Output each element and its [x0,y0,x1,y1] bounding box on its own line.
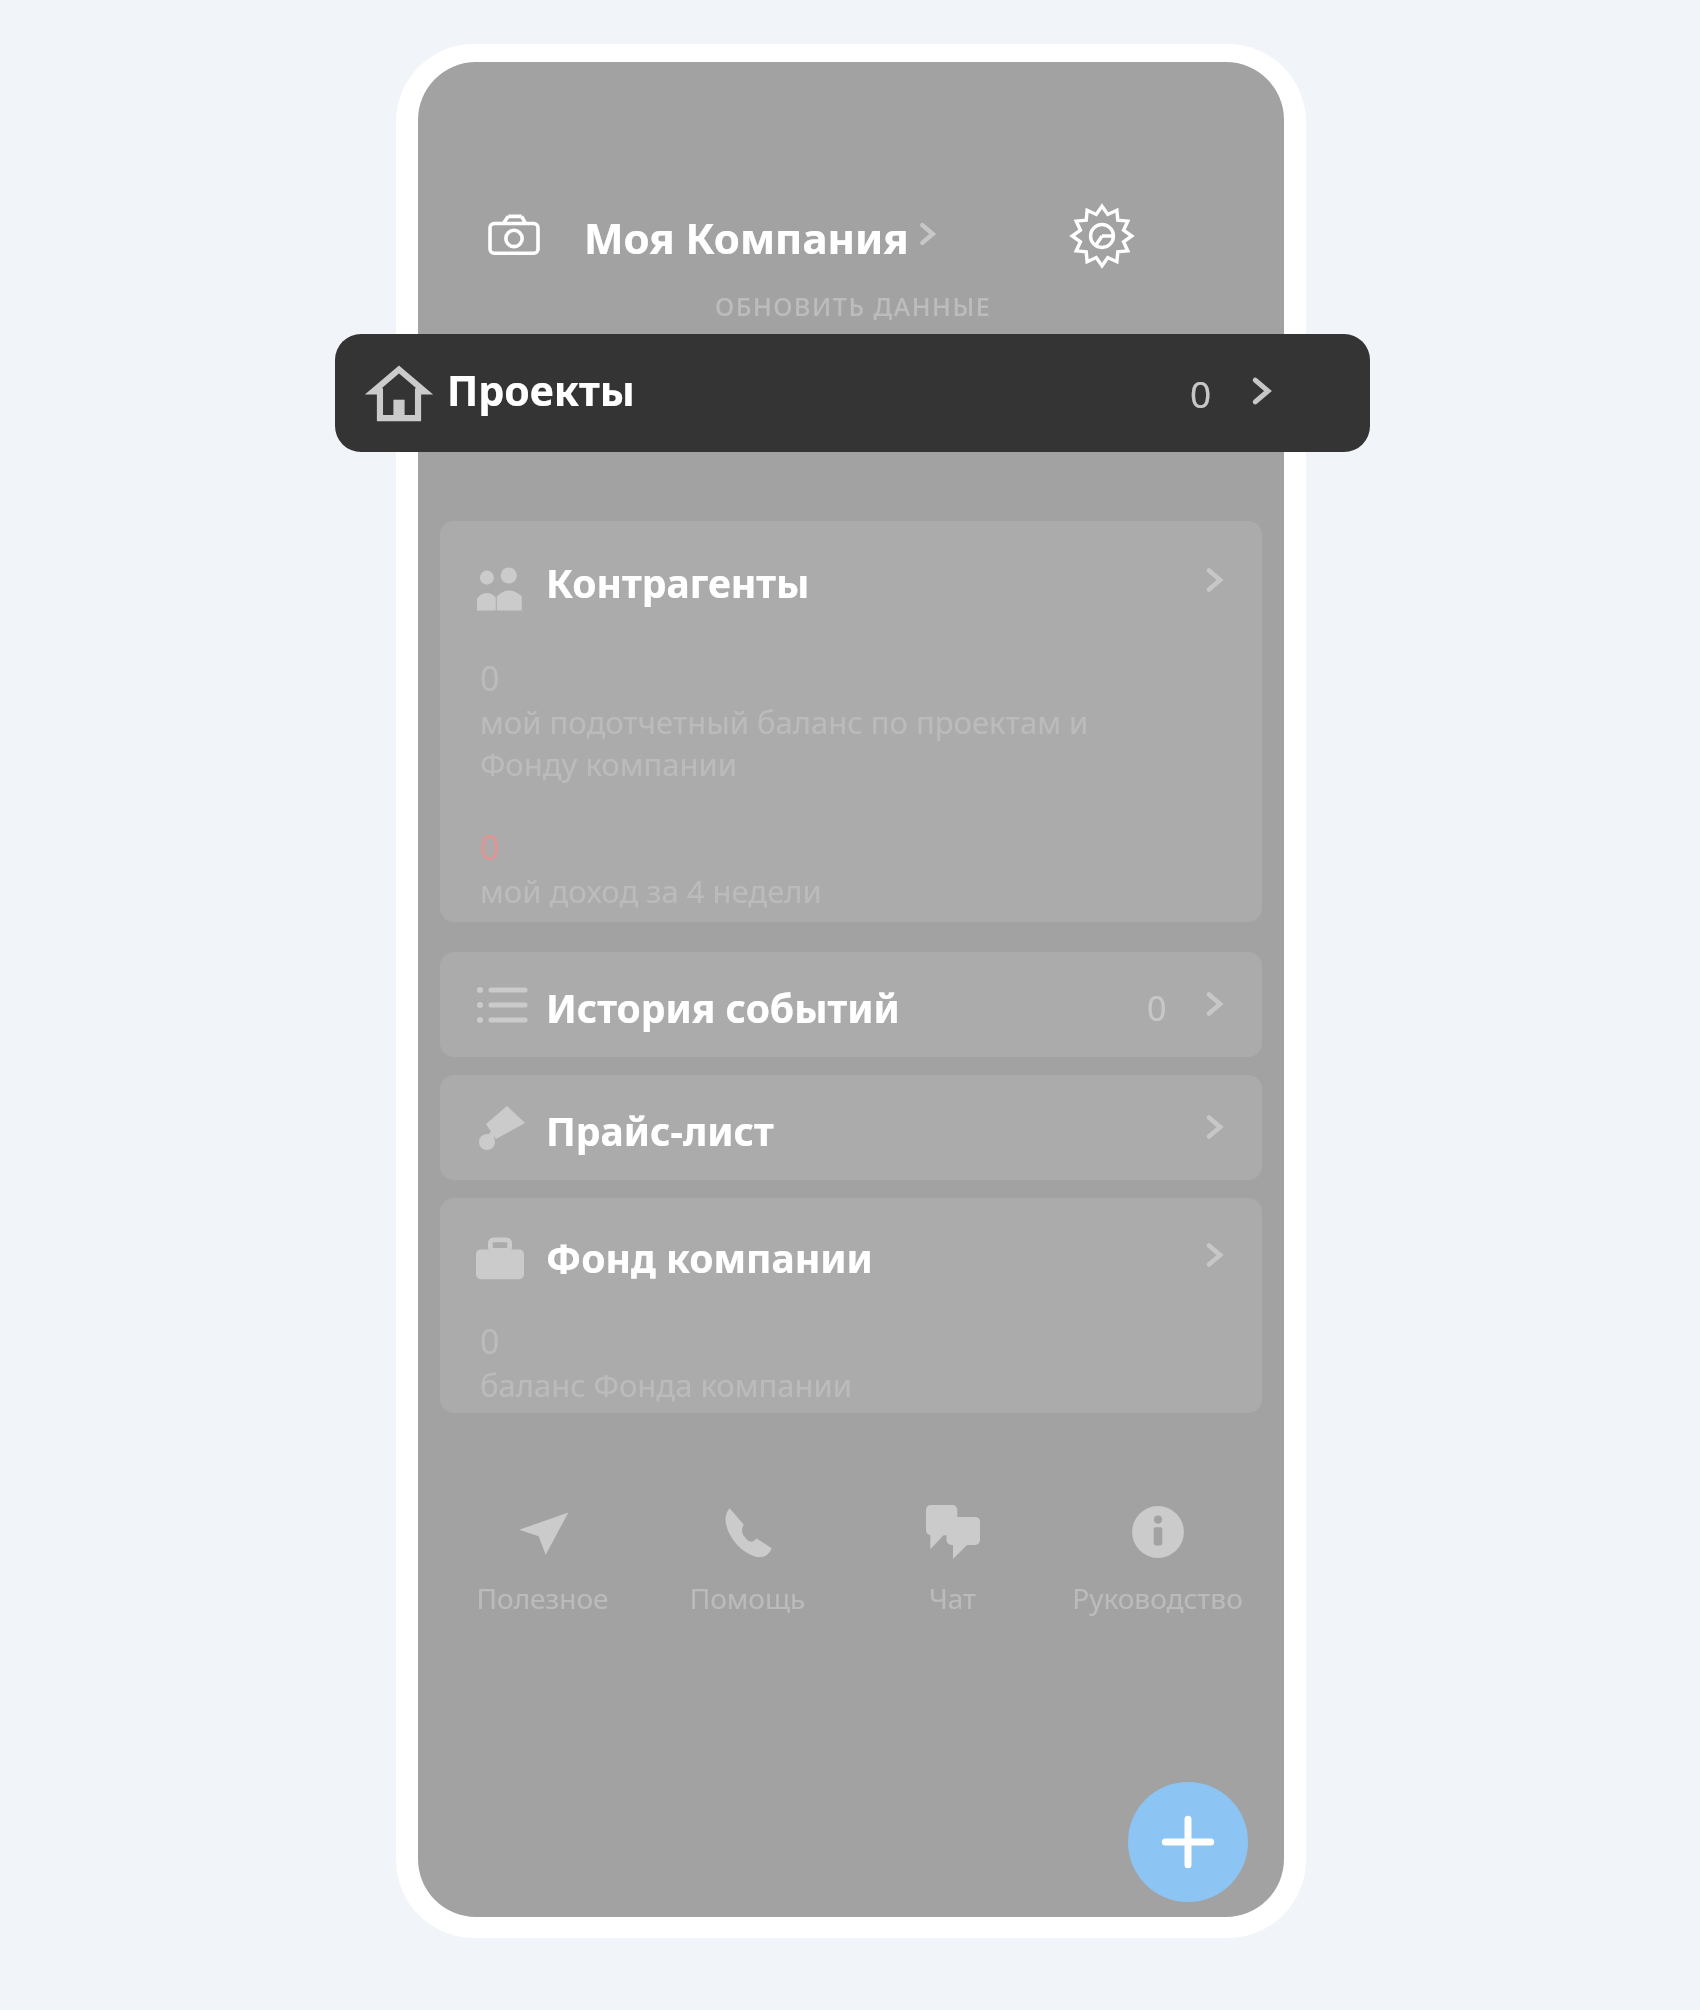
button[interactable]: Моя Компания [562,199,982,269]
button[interactable]: Прайс-лист [440,1075,1262,1180]
staticText: мой доход за 4 недели [480,870,822,912]
staticText: 0 [1147,985,1167,1031]
staticText: мой подотчетный баланс по проектам и Фон… [480,701,1089,785]
button[interactable]: Помощь [645,1487,850,1637]
staticText: Проекты [447,362,635,418]
button[interactable]: Руководство [1055,1487,1260,1637]
staticText: 0 [480,655,500,701]
button[interactable]: История событий [440,952,1262,1057]
staticText: Полезное [440,1579,645,1625]
staticText: 0 [1190,368,1212,418]
staticText: баланс Фонда компании [480,1364,853,1406]
staticText: Контрагенты [546,556,810,609]
staticText: Помощь [645,1579,850,1625]
button[interactable]: Фонд компании [440,1198,1262,1413]
staticText: Чат [850,1579,1055,1625]
staticText: ОБНОВИТЬ ДАННЫЕ [715,289,992,323]
staticText: История событий [546,981,900,1034]
button[interactable]: Camera [474,197,564,267]
staticText: Прайс-лист [546,1104,774,1157]
button[interactable]: Add [1128,1782,1248,1902]
staticText: Руководство [1055,1579,1260,1625]
button[interactable]: ОБНОВИТЬ ДАННЫЕ [418,272,1284,334]
button[interactable]: Контрагенты [440,521,1262,922]
button[interactable]: Полезное [440,1487,645,1637]
button[interactable]: Чат [850,1487,1055,1637]
button[interactable]: Проекты [335,334,1370,452]
button[interactable]: Settings [1056,190,1148,282]
staticText: 0 [480,824,500,870]
staticText: Моя Компания [584,209,909,266]
staticText: 0 [480,1318,500,1364]
staticText: Фонд компании [546,1231,873,1284]
